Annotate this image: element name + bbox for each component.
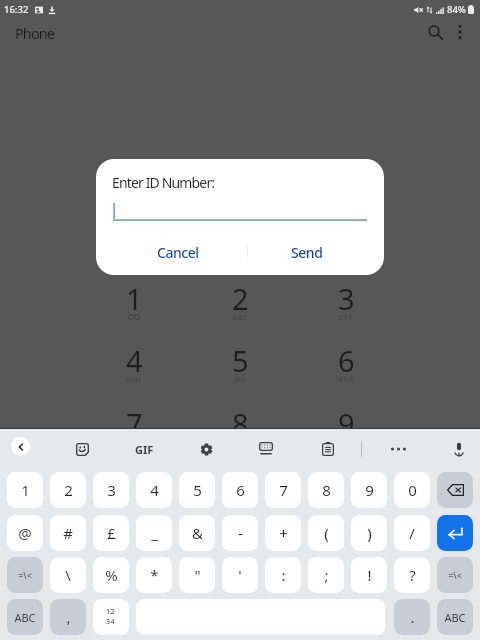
button[interactable]: More options [444, 16, 476, 48]
staticText: £ [107, 523, 116, 543]
staticText: 2 [232, 279, 249, 318]
button[interactable]: @ [7, 515, 43, 551]
button[interactable]: 8 [308, 472, 344, 508]
button[interactable]: - [222, 515, 258, 551]
staticText: 2 [64, 480, 73, 500]
button[interactable]: 2 [200, 279, 280, 337]
staticText: 8 [232, 404, 249, 443]
staticText: ABC [232, 312, 249, 322]
button[interactable]: ( [308, 515, 344, 551]
button[interactable]: \ [50, 557, 86, 593]
staticText: =\< [448, 569, 462, 581]
staticText: 12 [106, 607, 116, 617]
staticText: 84% [447, 3, 466, 16]
button[interactable]: Stickers [68, 435, 96, 463]
staticText: ! [367, 565, 372, 585]
button[interactable]: 7 [94, 404, 174, 462]
button[interactable]: 6 [222, 472, 258, 508]
button[interactable]: 0 [394, 472, 430, 508]
button[interactable]: Settings [192, 435, 220, 463]
button[interactable]: 1 [94, 279, 174, 337]
staticText: 8 [322, 480, 331, 500]
button[interactable]: " [179, 557, 215, 593]
button[interactable]: 1 [7, 472, 43, 508]
staticText: ) [367, 523, 372, 543]
button[interactable]: ABC [437, 599, 473, 635]
button[interactable]: , [50, 599, 86, 635]
staticText: 9 [365, 480, 374, 500]
button[interactable]: 6 [306, 341, 386, 399]
button[interactable]: + [265, 515, 301, 551]
staticText: 9 [338, 404, 355, 443]
staticText: MNO [336, 374, 357, 384]
button[interactable]: Clipboard [314, 435, 342, 463]
staticText: Send [291, 243, 323, 262]
staticText: # [63, 523, 73, 543]
staticText: \ [65, 565, 71, 585]
button[interactable]: Keyboard mode [252, 435, 280, 463]
button[interactable]: 3 [93, 472, 129, 508]
staticText: 5 [193, 480, 202, 500]
button[interactable]: Send [275, 237, 339, 267]
staticText: ABC [444, 610, 466, 625]
staticText: 3 [338, 279, 355, 318]
button[interactable]: Voice input [445, 435, 473, 463]
staticText: / [409, 523, 415, 543]
button[interactable]: Symbols [93, 599, 129, 635]
button[interactable]: ? [394, 557, 430, 593]
staticText: JKL [234, 374, 247, 384]
button[interactable]: 7 [265, 472, 301, 508]
staticText: * [150, 565, 159, 585]
button[interactable]: Cancel [146, 237, 210, 267]
staticText: : [281, 565, 286, 585]
button[interactable]: ) [351, 515, 387, 551]
button[interactable]: ABC [7, 599, 43, 635]
staticText: 3 [107, 480, 116, 500]
staticText: PQRS [123, 437, 145, 447]
button[interactable]: % [93, 557, 129, 593]
button[interactable]: Backspace [437, 472, 473, 508]
button[interactable]: Search [419, 16, 451, 48]
staticText: 7 [279, 480, 288, 500]
button[interactable]: 3 [306, 279, 386, 337]
staticText: " [194, 565, 201, 585]
button[interactable]: # [50, 515, 86, 551]
staticText: , [66, 607, 71, 627]
button[interactable]: Enter [437, 515, 473, 551]
button[interactable]: / [394, 515, 430, 551]
staticText: ' [238, 565, 242, 585]
button[interactable]: =\< [437, 557, 473, 593]
staticText: ( [324, 523, 329, 543]
button[interactable]: * [136, 557, 172, 593]
button[interactable]: 8 [200, 404, 280, 462]
staticText: & [192, 523, 203, 543]
button[interactable]: _ [136, 515, 172, 551]
staticText: 1 [21, 480, 30, 500]
button[interactable]: ; [308, 557, 344, 593]
staticText: Cancel [157, 243, 199, 262]
staticText: Phone [15, 23, 55, 43]
button[interactable]: £ [93, 515, 129, 551]
button[interactable]: ' [222, 557, 258, 593]
button[interactable]: More [384, 435, 412, 463]
button[interactable]: GIF [130, 435, 158, 463]
button[interactable]: 4 [94, 341, 174, 399]
button[interactable]: . [394, 599, 430, 635]
button[interactable]: 2 [50, 472, 86, 508]
button[interactable]: 9 [306, 404, 386, 462]
button[interactable]: & [179, 515, 215, 551]
button[interactable]: ! [351, 557, 387, 593]
button[interactable]: =\< [7, 557, 43, 593]
staticText: DEF [338, 312, 354, 322]
button[interactable]: Back [11, 437, 30, 456]
button[interactable]: 5 [179, 472, 215, 508]
staticText: 0 [408, 480, 417, 500]
button[interactable]: 4 [136, 472, 172, 508]
button[interactable]: : [265, 557, 301, 593]
staticText: ? [409, 565, 416, 585]
staticText: 6 [338, 341, 355, 380]
button[interactable]: 5 [200, 341, 280, 399]
button[interactable]: 9 [351, 472, 387, 508]
